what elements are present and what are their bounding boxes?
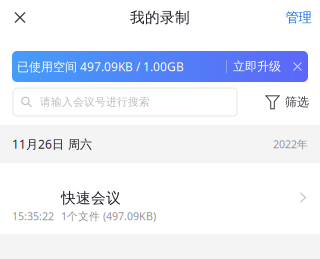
staticText: 管理 xyxy=(285,9,311,26)
button[interactable]: 筛选 xyxy=(263,88,309,116)
staticText: 立即升级 xyxy=(233,59,281,74)
staticText: 1个文件 (497.09KB) xyxy=(61,209,156,223)
staticText: 2022年 xyxy=(273,137,308,151)
button[interactable]: Close xyxy=(0,0,40,35)
button[interactable]: 15:35:22 xyxy=(0,163,320,234)
staticText: 请输入会议号进行搜索 xyxy=(40,95,150,108)
staticText: 已使用空间 497.09KB / 1.00GB xyxy=(17,58,184,74)
staticText: 快速会议 xyxy=(61,189,121,207)
staticText: 11月26日 周六 xyxy=(12,136,92,152)
button[interactable]: 请输入会议号进行搜索 xyxy=(13,88,237,116)
staticText: 我的录制 xyxy=(130,8,190,26)
staticText: 15:35:22 xyxy=(12,209,54,223)
button[interactable]: 立即升级 xyxy=(227,51,287,82)
button[interactable]: Dismiss banner xyxy=(287,51,308,82)
staticText: 筛选 xyxy=(285,95,309,109)
button[interactable]: 管理 xyxy=(277,0,320,35)
